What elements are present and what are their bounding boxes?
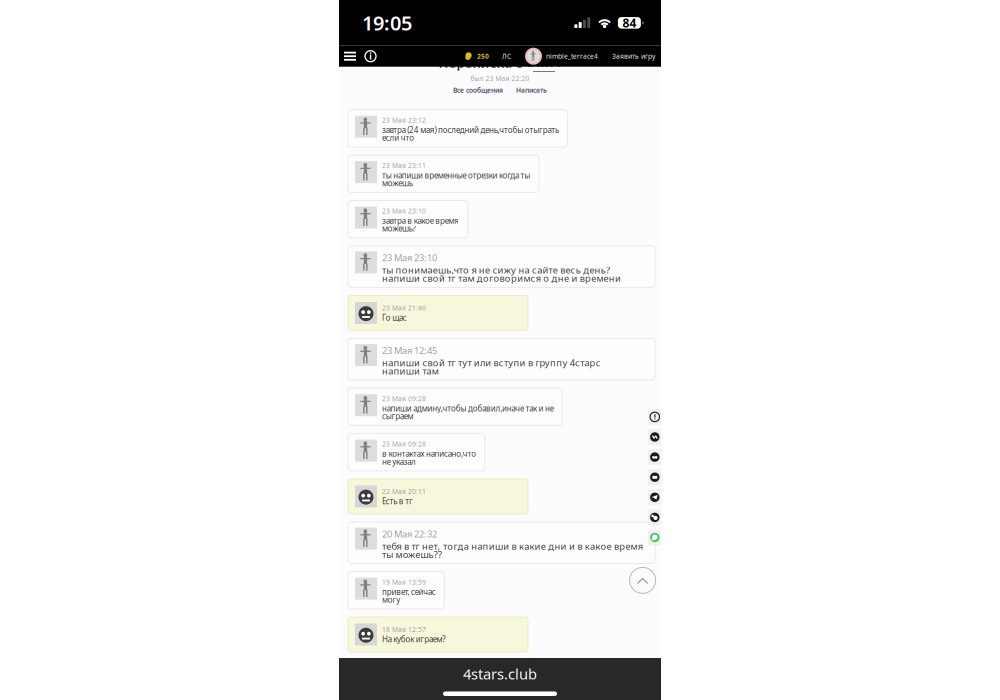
button[interactable]: Share on Telegram (648, 489, 662, 505)
button[interactable]: nimble_terrace4 (525, 48, 598, 65)
staticText: 84 (622, 15, 636, 31)
staticText: 250 (477, 52, 489, 61)
staticText: 23 Мая 23:12 (382, 116, 426, 125)
staticText: 23 Мая 23:11 (382, 161, 426, 170)
button[interactable]: 23 Мая 09:28 (348, 434, 485, 471)
staticText: 4stars.club (463, 664, 537, 683)
staticText: завтра в какое время можешь? (382, 215, 459, 234)
staticText: напиши админу,чтобы добавил,иначе так и … (382, 403, 554, 421)
staticText: ты напиши временные отрезки когда ты мож… (382, 170, 530, 188)
staticText: завтра (24 мая) последний день,чтобы оты… (382, 125, 559, 143)
staticText: Написать (516, 86, 547, 95)
button[interactable]: Share on Discord (648, 449, 662, 465)
button[interactable]: Заявить игру (612, 52, 655, 61)
button[interactable]: Все сообщения (453, 86, 503, 95)
staticText: На кубок играем? (382, 634, 445, 644)
staticText: 23 Мая 12:45 (382, 344, 437, 356)
staticText: привет, сейчас могу (382, 586, 436, 605)
button[interactable]: Info (365, 51, 376, 62)
staticText: 23 Мая 09:28 (382, 394, 426, 403)
staticText: 18 Мая 12:57 (382, 625, 426, 634)
button[interactable]: 23 Мая 09:28 (348, 388, 562, 425)
staticText: Есть в тг (382, 496, 413, 506)
staticText: в контактах написано,что не указал (382, 448, 476, 467)
staticText: 19 Мая 13:59 (382, 578, 426, 587)
staticText: ты понимаешь,что я не сижу на сайте весь… (382, 264, 621, 284)
button[interactable]: 19 Мая 13:59 (348, 572, 444, 609)
button[interactable]: 23 Мая 12:45 (348, 339, 655, 380)
button[interactable]: 23 Мая 23:10 (348, 200, 468, 238)
button[interactable]: 23 Мая 21:46 (348, 295, 528, 330)
staticText: ЛС (502, 52, 511, 61)
staticText: 23 Мая 23:10 (382, 206, 426, 215)
button[interactable]: 23 Мая 23:11 (348, 155, 539, 192)
staticText: напиши свой тг тут или вступи в группу 4… (382, 356, 601, 377)
staticText: 23 Мая 09:28 (382, 440, 426, 448)
button[interactable]: 23 Мая 23:12 (348, 110, 567, 147)
staticText: Все сообщения (453, 86, 503, 95)
button[interactable]: 250 (465, 52, 489, 61)
button[interactable]: Share on Steam (648, 509, 662, 525)
button[interactable]: Dim4 (526, 53, 561, 72)
button[interactable]: Scroll to top (630, 567, 656, 593)
button[interactable]: 20 Мая 22:32 (348, 522, 655, 564)
button[interactable]: Share on Odnoklassniki (648, 469, 662, 485)
staticText: 20 Мая 22:32 (382, 528, 437, 540)
button[interactable]: Share on WhatsApp (648, 530, 662, 545)
staticText: был 23 Мая 22:20 (470, 74, 529, 83)
button[interactable]: ЛС (502, 52, 511, 61)
button[interactable]: 23 Мая 23:10 (348, 246, 655, 287)
button[interactable]: 22 Мая 20:11 (348, 479, 528, 514)
staticText: Переписка с (438, 54, 522, 71)
staticText: 23 Мая 23:10 (382, 251, 437, 264)
button[interactable]: Написать (516, 86, 547, 95)
staticText: Заявить игру (612, 52, 655, 61)
button[interactable]: Report a problem (648, 409, 662, 425)
staticText: 22 Мая 20:11 (382, 487, 426, 496)
button[interactable]: Menu (344, 52, 356, 61)
staticText: nimble_terrace4 (546, 52, 598, 61)
staticText: Dim4 (526, 53, 561, 71)
staticText: 19:05 (362, 10, 412, 36)
staticText: тебя в тг нет, тогда напиши в какие дни … (382, 540, 643, 561)
staticText: 23 Мая 21:46 (382, 303, 426, 312)
button[interactable]: 18 Мая 12:57 (348, 617, 528, 652)
button[interactable]: Share on VK (648, 429, 662, 445)
staticText: Го щас (382, 312, 407, 323)
